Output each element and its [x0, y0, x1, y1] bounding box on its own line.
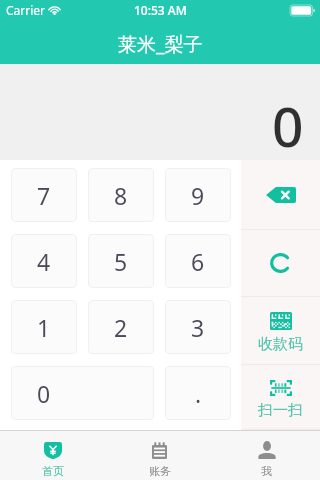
staticText: Carrier: [6, 2, 46, 18]
button[interactable]: 1: [11, 300, 77, 354]
staticText: 5: [114, 246, 128, 277]
staticText: 0: [37, 378, 51, 409]
staticText: 9: [191, 180, 205, 211]
staticText: 我: [261, 464, 272, 478]
staticText: 扫一扫: [258, 401, 303, 420]
button[interactable]: 扫一扫: [241, 365, 320, 430]
staticText: 1: [37, 312, 51, 343]
staticText: 3: [191, 312, 205, 343]
staticText: 6: [191, 246, 205, 277]
staticText: .: [195, 378, 202, 409]
button[interactable]: .: [165, 366, 231, 420]
button[interactable]: 4: [11, 234, 77, 288]
staticText: 8: [114, 180, 128, 211]
button[interactable]: 首页: [0, 430, 106, 480]
button[interactable]: Clear: [241, 230, 320, 297]
staticText: 账务: [149, 464, 171, 478]
button[interactable]: 账务: [106, 430, 213, 480]
button[interactable]: Backspace: [241, 160, 320, 230]
staticText: 收款码: [258, 335, 303, 354]
button[interactable]: 我: [213, 430, 320, 480]
button[interactable]: 9: [165, 168, 231, 222]
staticText: 首页: [42, 464, 64, 478]
button[interactable]: 8: [88, 168, 154, 222]
staticText: 4: [37, 246, 51, 277]
button[interactable]: 7: [11, 168, 77, 222]
button[interactable]: 6: [165, 234, 231, 288]
staticText: 2: [114, 312, 128, 343]
staticText: 10:53 AM: [134, 2, 187, 18]
staticText: 莱米_梨子: [118, 31, 203, 57]
button[interactable]: 2: [88, 300, 154, 354]
button[interactable]: 3: [165, 300, 231, 354]
button[interactable]: 收款码: [241, 297, 320, 365]
staticText: 7: [37, 180, 51, 211]
button[interactable]: 5: [88, 234, 154, 288]
staticText: 0: [272, 88, 304, 160]
button[interactable]: 0: [11, 366, 154, 420]
